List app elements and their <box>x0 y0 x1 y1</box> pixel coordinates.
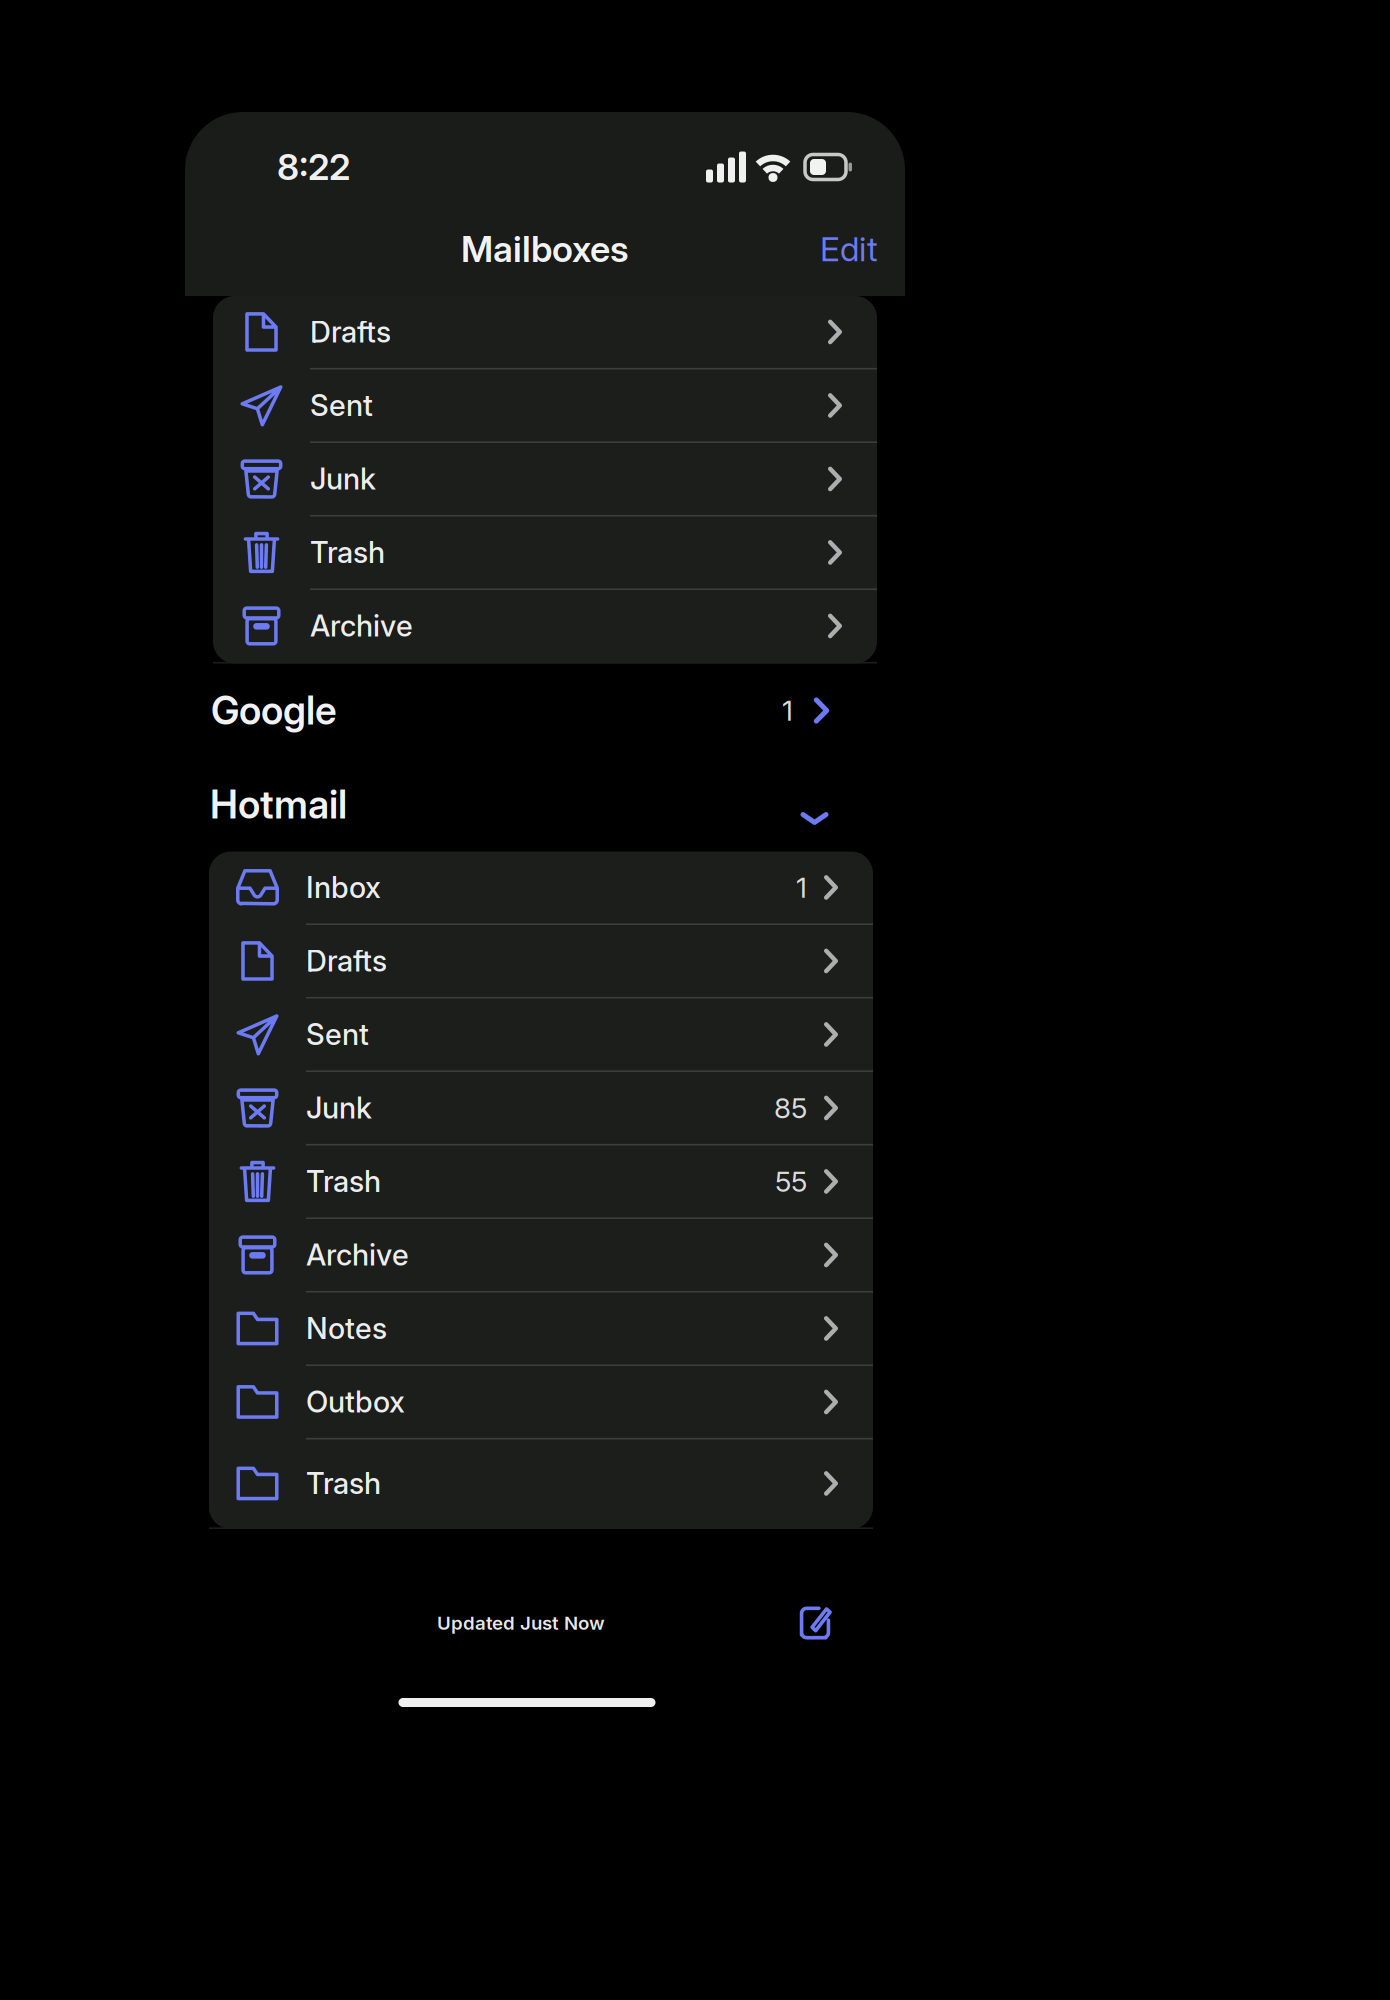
staticText: Trash <box>306 1164 381 1199</box>
staticText: Mailboxes <box>461 227 629 271</box>
button[interactable]: Google <box>183 663 903 757</box>
button[interactable]: Trash <box>213 516 877 590</box>
button[interactable]: Archive <box>209 1219 873 1292</box>
staticText: 1 <box>782 694 793 727</box>
button[interactable]: Trash <box>209 1439 873 1529</box>
staticText: Archive <box>310 608 413 644</box>
button[interactable]: Archive <box>213 590 877 663</box>
button[interactable]: Edit <box>820 215 905 283</box>
staticText: Notes <box>306 1311 387 1346</box>
button[interactable]: Drafts <box>209 925 873 998</box>
button[interactable]: Trash <box>209 1145 873 1219</box>
staticText: Hotmail <box>210 781 347 828</box>
staticText: Archive <box>306 1237 409 1273</box>
staticText: 8:22 <box>277 145 350 189</box>
staticText: Updated Just Now <box>437 1612 605 1634</box>
button[interactable]: Notes <box>209 1292 873 1366</box>
staticText: 85 <box>774 1091 807 1125</box>
staticText: Drafts <box>306 943 387 979</box>
staticText: 55 <box>775 1164 807 1198</box>
staticText: Trash <box>310 535 385 570</box>
button[interactable]: Outbox <box>209 1366 873 1439</box>
staticText: Google <box>211 687 337 734</box>
staticText: Junk <box>310 461 376 497</box>
button[interactable]: Sent <box>213 369 877 443</box>
staticText: Sent <box>310 388 373 423</box>
button[interactable]: Inbox <box>209 851 873 925</box>
button[interactable]: Junk <box>213 443 877 516</box>
staticText: Sent <box>306 1017 369 1052</box>
button[interactable]: Junk <box>209 1072 873 1145</box>
staticText: Edit <box>820 229 878 269</box>
button[interactable]: Hotmail <box>182 757 902 851</box>
button[interactable]: Drafts <box>213 296 877 369</box>
staticText: Junk <box>306 1090 372 1126</box>
staticText: Inbox <box>306 870 381 905</box>
staticText: Trash <box>306 1466 381 1501</box>
staticText: Outbox <box>306 1384 405 1420</box>
button[interactable]: Compose <box>781 1587 849 1658</box>
staticText: 1 <box>796 870 807 904</box>
button[interactable]: Sent <box>209 998 873 1072</box>
staticText: Drafts <box>310 314 391 350</box>
